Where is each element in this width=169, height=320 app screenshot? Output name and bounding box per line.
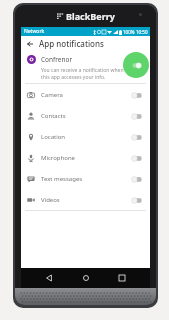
button[interactable]: Contacts	[21, 105, 150, 126]
staticText: Confrenor	[41, 55, 73, 64]
staticText: BlackBerry	[66, 10, 115, 22]
staticText: 10:50	[136, 29, 148, 35]
staticText: Camera	[41, 91, 128, 99]
staticText: Contacts	[41, 112, 128, 120]
staticText: 100%	[123, 29, 135, 35]
staticText: Videos	[41, 196, 128, 204]
button[interactable]: Back	[24, 38, 35, 49]
button[interactable]: Camera	[21, 84, 150, 105]
button[interactable]: Text messages	[21, 168, 150, 189]
staticText: Microphone	[41, 154, 128, 162]
staticText: Location	[41, 133, 128, 141]
button[interactable]: Confrenor	[21, 50, 150, 83]
button[interactable]: Notification toggle	[123, 52, 149, 78]
staticText: App notifications	[39, 38, 104, 49]
staticText: Network	[24, 28, 45, 35]
button[interactable]: Back	[41, 270, 57, 286]
button[interactable]: Location	[21, 126, 150, 147]
button[interactable]: Microphone	[21, 147, 150, 168]
staticText: You can receive a notification when this…	[41, 67, 126, 81]
button[interactable]: Videos	[21, 189, 150, 210]
button[interactable]: Recent apps	[114, 270, 130, 286]
button[interactable]: Home	[78, 270, 94, 286]
staticText: Text messages	[41, 175, 128, 183]
